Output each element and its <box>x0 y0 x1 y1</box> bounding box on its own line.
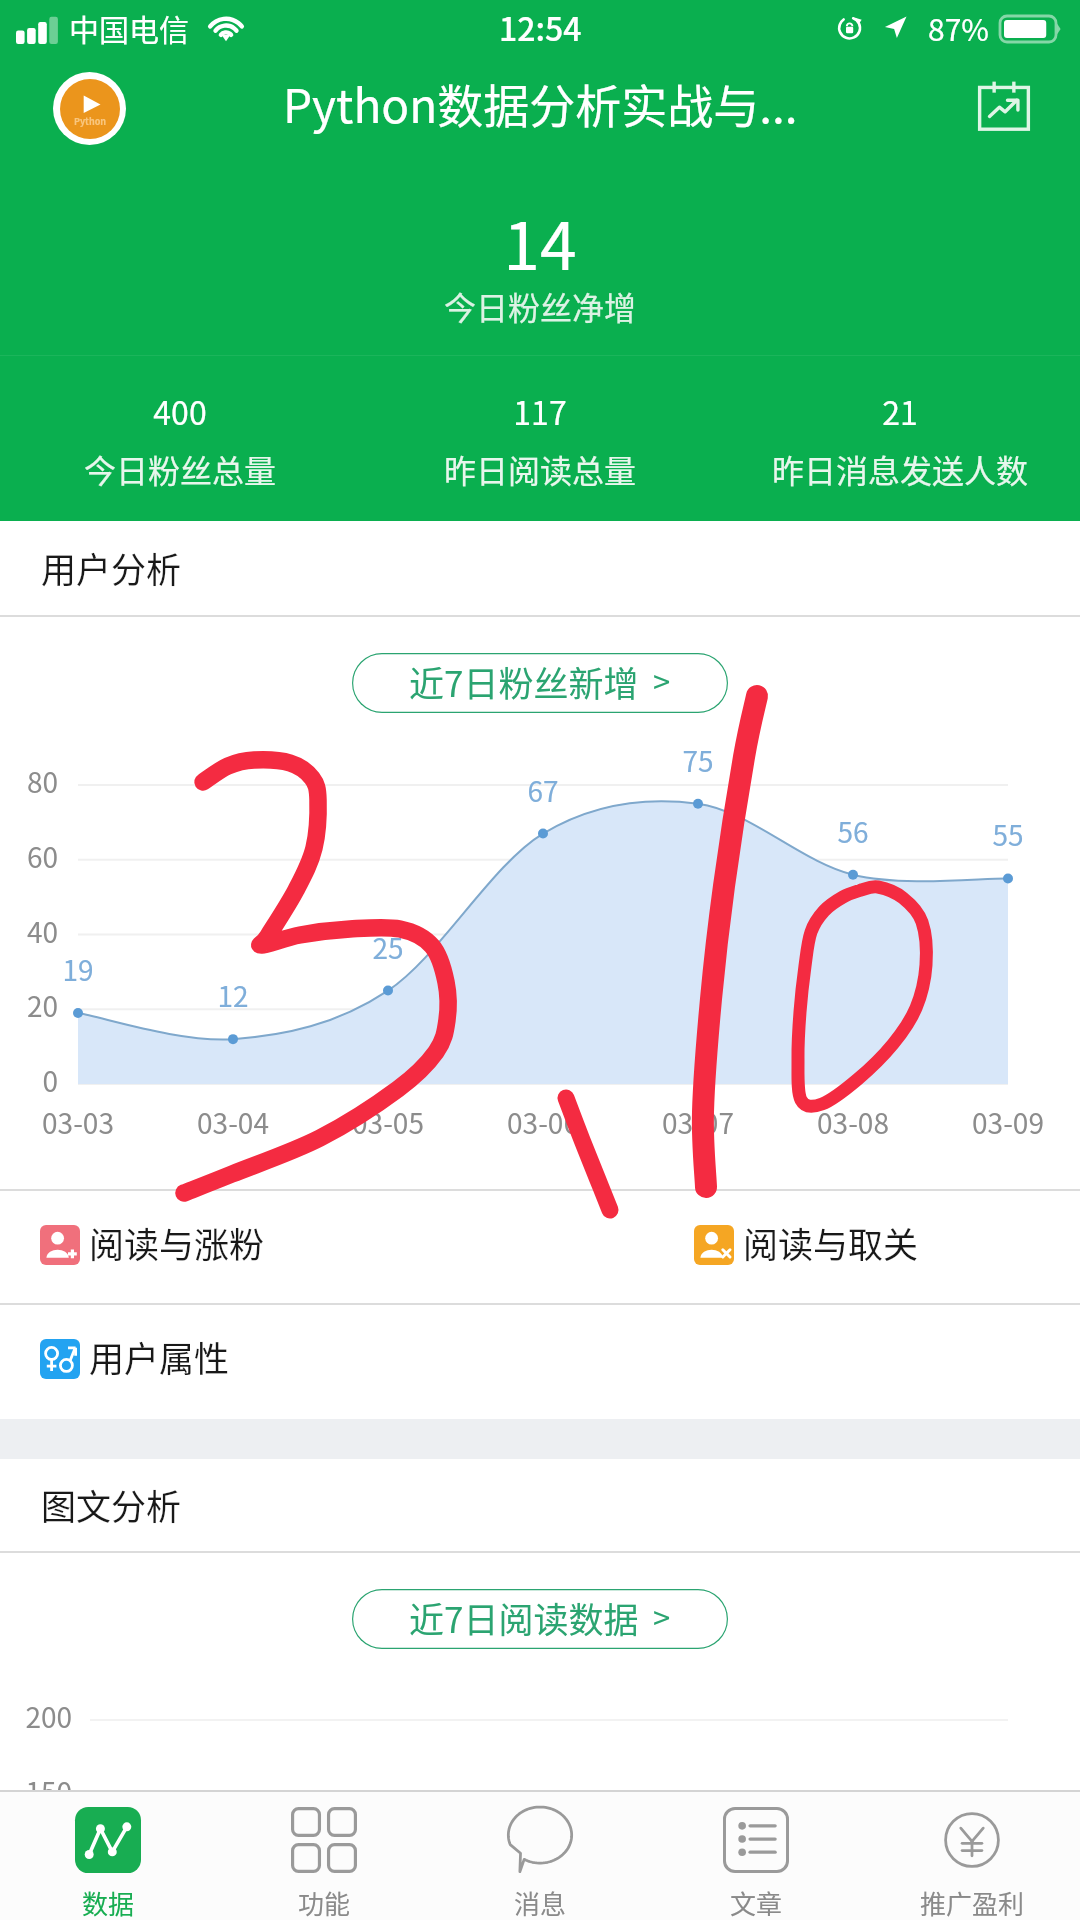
staticText: 03-07 <box>618 1102 778 1143</box>
button[interactable]: 21 <box>720 388 1080 492</box>
staticText: 03-08 <box>773 1102 933 1143</box>
staticText: 昨日消息发送人数 <box>720 446 1080 492</box>
button[interactable]: 400 <box>0 388 360 492</box>
staticText: 中国电信 <box>69 6 189 49</box>
staticText: 文章 <box>730 1884 783 1920</box>
staticText: 昨日阅读总量 <box>360 446 720 492</box>
button[interactable]: 阅读与取关 <box>694 1201 919 1288</box>
button[interactable]: 推广盈利 <box>864 1792 1080 1920</box>
staticText: 用户分析 <box>41 542 182 593</box>
button[interactable]: 用户属性 <box>40 1315 230 1402</box>
button[interactable]: Data trends <box>972 74 1036 138</box>
staticText: > <box>653 658 671 703</box>
staticText: 03-06 <box>463 1102 623 1143</box>
staticText: 20 <box>0 985 58 1026</box>
button[interactable]: 功能 <box>216 1792 432 1920</box>
staticText: 55 <box>958 814 1058 855</box>
staticText: 03-03 <box>0 1102 158 1143</box>
staticText: 19 <box>28 949 128 990</box>
staticText: 今日粉丝净增 <box>0 283 1080 329</box>
button[interactable]: Account avatar <box>53 72 126 145</box>
staticText: 推广盈利 <box>920 1884 1025 1920</box>
staticText: 今日粉丝总量 <box>0 446 360 492</box>
staticText: 75 <box>648 740 748 781</box>
staticText: 117 <box>360 388 720 434</box>
staticText: Python <box>60 115 120 128</box>
staticText: 21 <box>720 388 1080 434</box>
staticText: 67 <box>493 770 593 811</box>
button[interactable]: 数据 <box>0 1792 216 1920</box>
staticText: 近7日粉丝新增 <box>409 656 639 707</box>
staticText: 阅读与涨粉 <box>89 1217 265 1268</box>
button[interactable]: 117 <box>360 388 720 492</box>
staticText: 40 <box>0 911 58 952</box>
staticText: 近7日阅读数据 <box>409 1592 639 1643</box>
staticText: 03-09 <box>928 1102 1080 1143</box>
staticText: 400 <box>0 388 360 434</box>
staticText: 数据 <box>82 1884 135 1920</box>
staticText: 用户属性 <box>89 1331 230 1382</box>
staticText: 消息 <box>514 1884 567 1920</box>
staticText: 60 <box>0 836 58 877</box>
button[interactable]: 近7日阅读数据 <box>352 1589 728 1649</box>
staticText: 80 <box>0 761 58 802</box>
staticText: 150 <box>0 1771 72 1812</box>
staticText: Python数据分析实战与... <box>283 70 798 137</box>
staticText: 阅读与取关 <box>743 1217 919 1268</box>
staticText: 功能 <box>298 1884 351 1920</box>
button[interactable]: 消息 <box>432 1792 648 1920</box>
staticText: 12:54 <box>499 4 582 50</box>
staticText: 03-05 <box>308 1102 468 1143</box>
staticText: 200 <box>0 1696 72 1737</box>
staticText: 0 <box>0 1060 58 1101</box>
staticText: 12 <box>183 975 283 1016</box>
staticText: 25 <box>338 927 438 968</box>
button[interactable]: 文章 <box>648 1792 864 1920</box>
staticText: 14 <box>0 193 1080 289</box>
button[interactable]: 阅读与涨粉 <box>40 1201 265 1288</box>
button[interactable]: 近7日粉丝新增 <box>352 653 728 713</box>
staticText: 87% <box>928 6 989 49</box>
staticText: > <box>653 1594 671 1639</box>
staticText: 图文分析 <box>41 1479 182 1530</box>
staticText: 56 <box>803 811 903 852</box>
staticText: 03-04 <box>153 1102 313 1143</box>
